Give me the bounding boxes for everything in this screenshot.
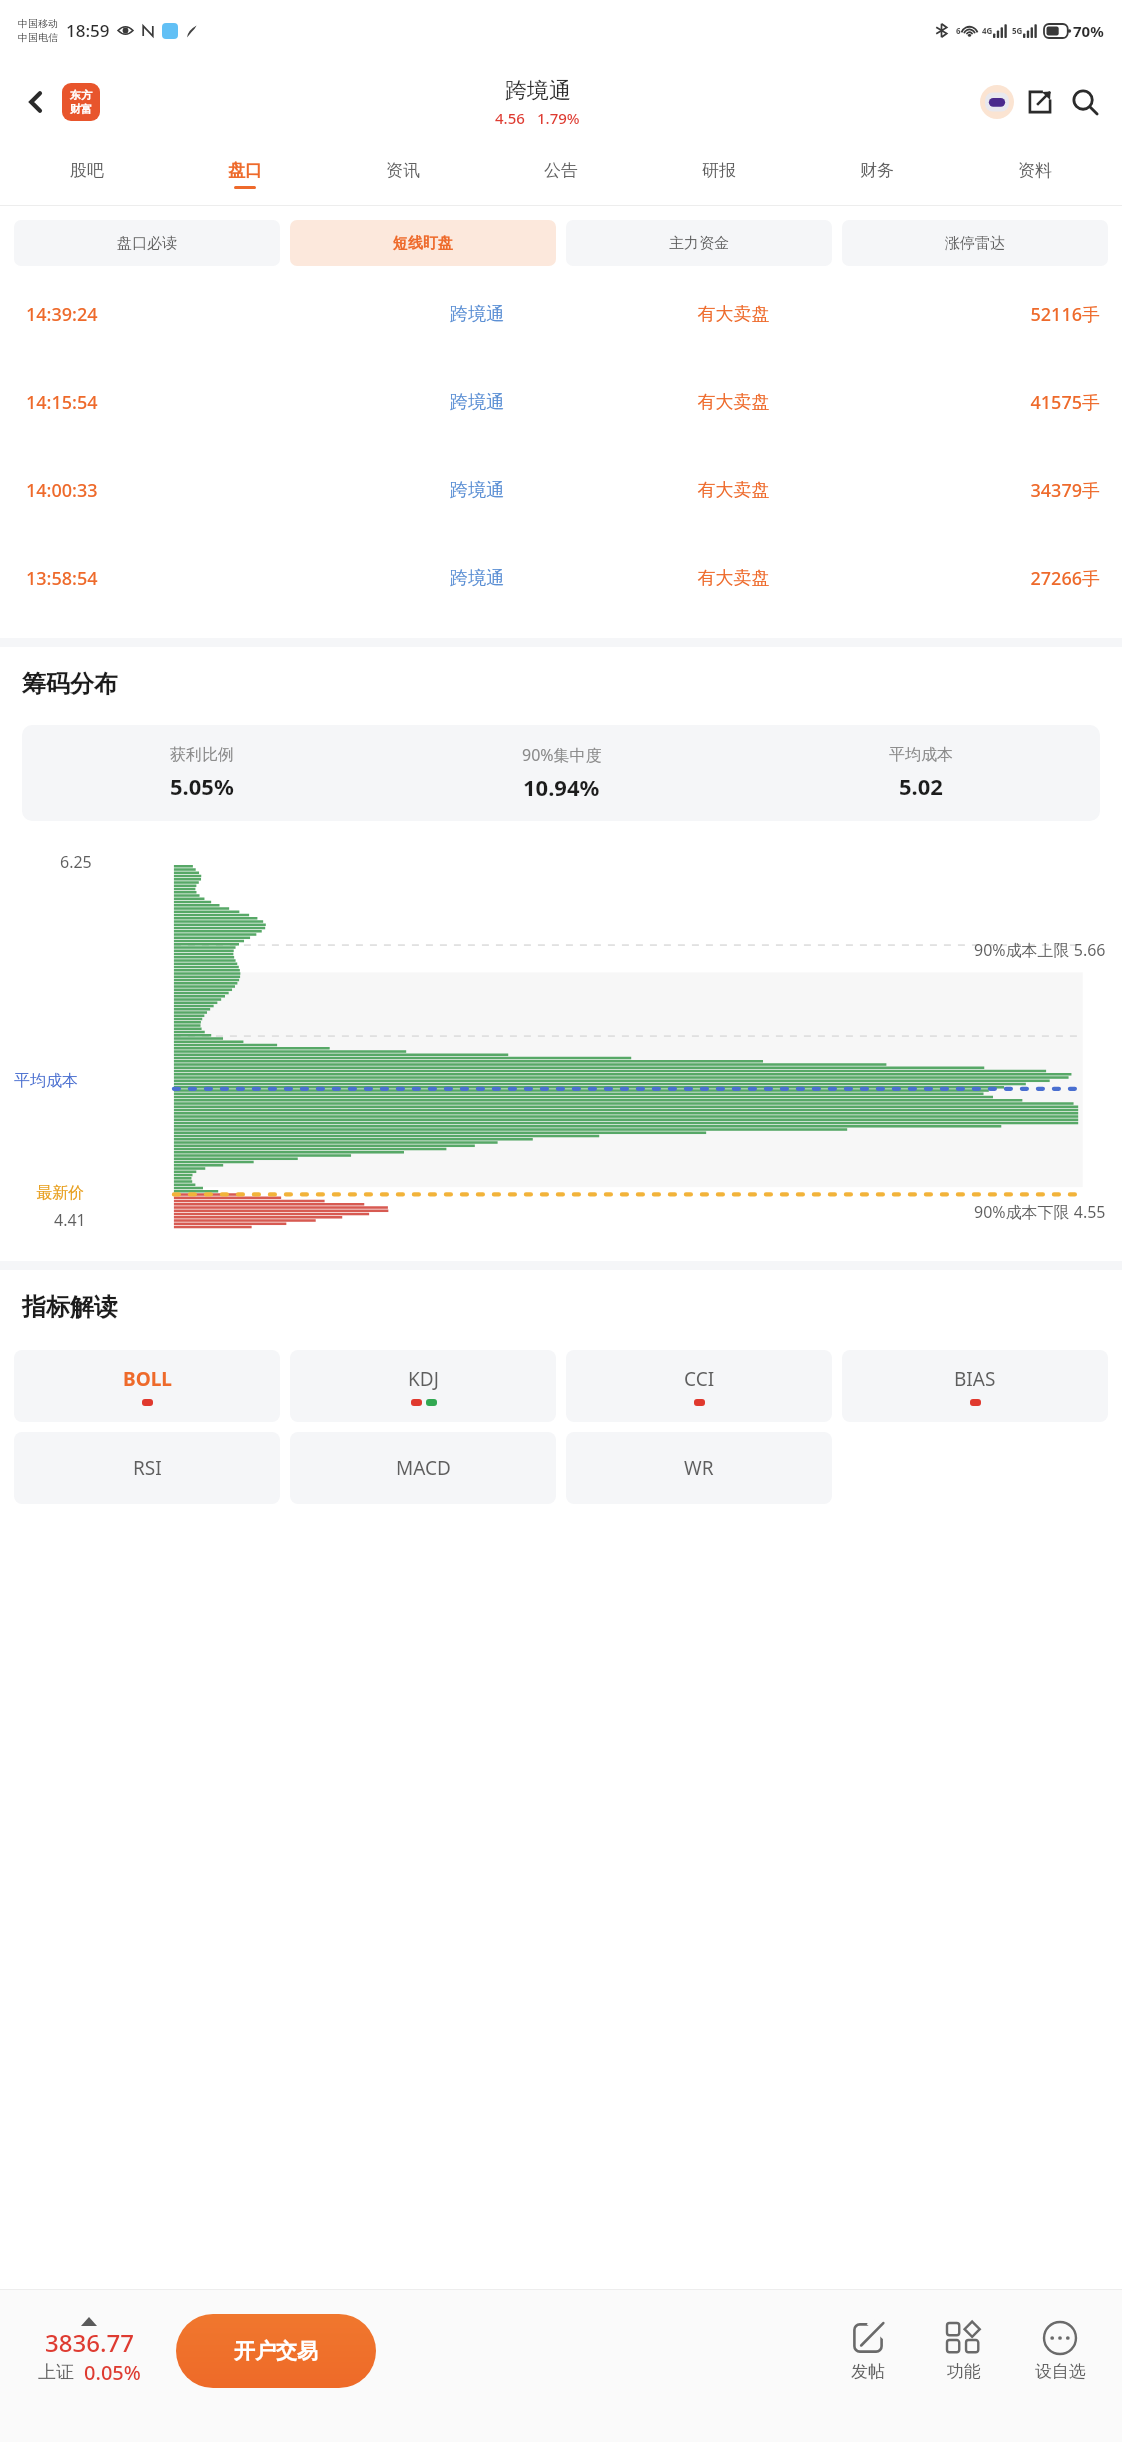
staticText: 6 bbox=[956, 25, 961, 36]
staticText: CCI bbox=[684, 1366, 715, 1392]
button[interactable]: 搜索 bbox=[1062, 79, 1108, 125]
button[interactable]: MACD bbox=[290, 1432, 556, 1504]
staticText: 6.25 bbox=[60, 851, 92, 873]
staticText: 跨境通 bbox=[355, 303, 599, 326]
staticText: RSI bbox=[133, 1455, 162, 1481]
staticText: 资讯 bbox=[386, 160, 420, 181]
staticText: 跨境通 bbox=[355, 479, 599, 502]
button[interactable]: 主力资金 bbox=[566, 220, 832, 266]
staticText: 5.05% bbox=[170, 771, 234, 801]
button[interactable]: 设自选 bbox=[1012, 2321, 1108, 2382]
staticText: 跨境通 bbox=[355, 391, 599, 414]
button[interactable]: 发帖 bbox=[820, 2321, 916, 2382]
staticText: 90%集中度 bbox=[522, 744, 602, 766]
button[interactable]: 盘口必读 bbox=[14, 220, 280, 266]
staticText: 涨停雷达 bbox=[945, 234, 1005, 253]
staticText: WR bbox=[684, 1455, 714, 1481]
staticText: 70% bbox=[1073, 21, 1104, 41]
button[interactable]: 分享 bbox=[1018, 80, 1062, 124]
button[interactable]: 研报 bbox=[640, 143, 798, 205]
staticText: 有大卖盘 bbox=[599, 303, 868, 326]
staticText: 有大卖盘 bbox=[599, 391, 868, 414]
button[interactable]: 东方财富 bbox=[62, 83, 100, 121]
staticText: 公告 bbox=[544, 160, 578, 181]
button[interactable]: 14:39:24 bbox=[0, 270, 1122, 358]
staticText: 短线盯盘 bbox=[393, 234, 453, 253]
staticText: 有大卖盘 bbox=[599, 479, 868, 502]
staticText: 发帖 bbox=[851, 2361, 885, 2382]
staticText: 获利比例 bbox=[170, 745, 234, 765]
button[interactable]: 股吧 bbox=[8, 143, 166, 205]
button[interactable]: RSI bbox=[14, 1432, 280, 1504]
button[interactable]: CCI bbox=[566, 1350, 832, 1422]
button[interactable]: 14:15:54 bbox=[0, 358, 1122, 446]
staticText: 盘口 bbox=[228, 160, 262, 181]
staticText: 5G bbox=[1012, 25, 1023, 36]
staticText: 5.02 bbox=[899, 771, 943, 801]
staticText: 0.05% bbox=[84, 2359, 141, 2386]
button[interactable]: 资讯 bbox=[324, 143, 482, 205]
staticText: 4.56 bbox=[495, 108, 525, 128]
staticText: 东方 bbox=[70, 88, 92, 102]
button[interactable]: 开户交易 bbox=[176, 2314, 376, 2388]
staticText: 41575手 bbox=[868, 390, 1100, 415]
staticText: 上证 bbox=[38, 2361, 74, 2384]
staticText: 4.41 bbox=[54, 1209, 86, 1231]
staticText: 筹码分布 bbox=[22, 669, 118, 699]
button[interactable]: 短线盯盘 bbox=[290, 220, 556, 266]
staticText: 平均成本 bbox=[889, 745, 953, 765]
staticText: 股吧 bbox=[70, 160, 104, 181]
staticText: 研报 bbox=[702, 160, 736, 181]
staticText: 有大卖盘 bbox=[599, 567, 868, 590]
button[interactable]: 3836.77 bbox=[14, 2317, 164, 2386]
button[interactable]: 盘口 bbox=[166, 143, 324, 205]
staticText: 开户交易 bbox=[234, 2338, 318, 2364]
button[interactable]: 公告 bbox=[482, 143, 640, 205]
staticText: 90%成本下限 4.55 bbox=[974, 1201, 1106, 1223]
button[interactable]: KDJ bbox=[290, 1350, 556, 1422]
staticText: 14:39:24 bbox=[26, 302, 355, 327]
staticText: 中国移动 bbox=[18, 17, 58, 30]
staticText: 3836.77 bbox=[45, 2326, 134, 2359]
button[interactable]: 14:00:33 bbox=[0, 446, 1122, 534]
staticText: 4G bbox=[982, 25, 993, 36]
staticText: 13:58:54 bbox=[26, 566, 355, 591]
staticText: 14:00:33 bbox=[26, 478, 355, 503]
button[interactable]: WR bbox=[566, 1432, 832, 1504]
staticText: 财务 bbox=[860, 160, 894, 181]
button[interactable]: AI 助手 bbox=[976, 81, 1018, 123]
staticText: 跨境通 bbox=[355, 567, 599, 590]
staticText: 90%成本上限 5.66 bbox=[974, 939, 1106, 961]
staticText: 设自选 bbox=[1035, 2361, 1086, 2382]
staticText: 盘口必读 bbox=[117, 234, 177, 253]
staticText: 资料 bbox=[1018, 160, 1052, 181]
button[interactable]: BOLL bbox=[14, 1350, 280, 1422]
button[interactable]: 返回 bbox=[14, 80, 58, 124]
staticText: BOLL bbox=[123, 1366, 172, 1392]
button[interactable]: 涨停雷达 bbox=[842, 220, 1108, 266]
button[interactable]: 跨境通 bbox=[495, 77, 580, 128]
staticText: 27266手 bbox=[868, 566, 1100, 591]
staticText: 功能 bbox=[947, 2361, 981, 2382]
staticText: MACD bbox=[396, 1455, 451, 1481]
button[interactable]: 13:58:54 bbox=[0, 534, 1122, 622]
staticText: 1.79% bbox=[537, 108, 580, 128]
staticText: 平均成本 bbox=[14, 1071, 78, 1091]
staticText: 财富 bbox=[70, 102, 92, 116]
button[interactable]: 财务 bbox=[798, 143, 956, 205]
staticText: 指标解读 bbox=[22, 1292, 118, 1322]
staticText: 10.94% bbox=[523, 772, 600, 802]
staticText: 18:59 bbox=[66, 19, 110, 42]
button[interactable]: 功能 bbox=[916, 2321, 1012, 2382]
staticText: 中国电信 bbox=[18, 31, 58, 44]
staticText: 跨境通 bbox=[505, 77, 571, 105]
staticText: 主力资金 bbox=[669, 234, 729, 253]
staticText: KDJ bbox=[408, 1366, 439, 1392]
button[interactable]: BIAS bbox=[842, 1350, 1108, 1422]
button[interactable]: 资料 bbox=[956, 143, 1114, 205]
staticText: 最新价 bbox=[36, 1183, 84, 1203]
staticText: 52116手 bbox=[868, 302, 1100, 327]
staticText: 14:15:54 bbox=[26, 390, 355, 415]
staticText: BIAS bbox=[954, 1366, 996, 1392]
staticText: 34379手 bbox=[868, 478, 1100, 503]
